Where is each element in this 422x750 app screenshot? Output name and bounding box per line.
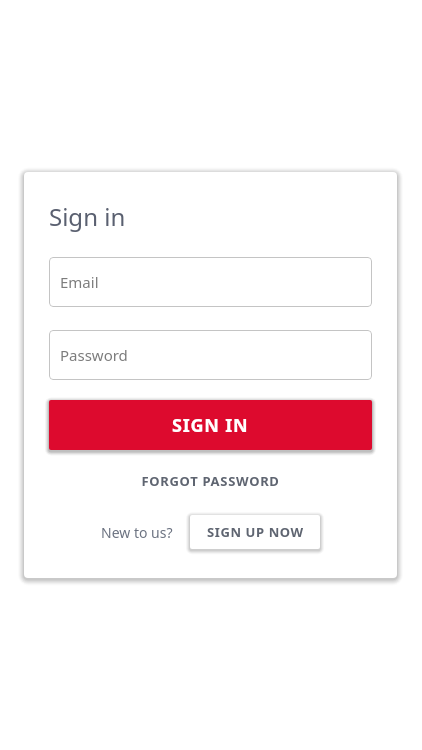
staticText: New to us?: [101, 523, 173, 542]
staticText: SIGN IN: [172, 413, 249, 438]
button[interactable]: SIGN IN: [49, 400, 372, 450]
staticText: SIGN UP NOW: [207, 523, 304, 541]
staticText: Email: [60, 272, 99, 292]
staticText: Password: [60, 345, 128, 365]
button[interactable]: FORGOT PASSWORD: [49, 472, 372, 490]
button[interactable]: Sign in: [49, 200, 126, 233]
button[interactable]: SIGN UP NOW: [190, 515, 320, 549]
button[interactable]: Password: [49, 330, 372, 380]
staticText: FORGOT PASSWORD: [141, 472, 280, 490]
button[interactable]: Email: [49, 257, 372, 307]
